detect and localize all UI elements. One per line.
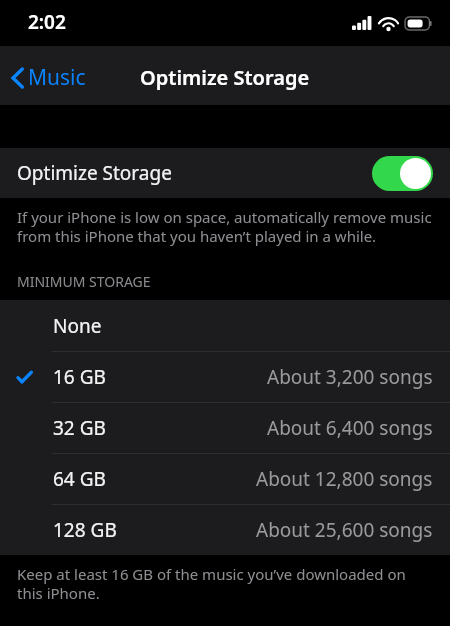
staticText: 64 GB — [53, 466, 106, 492]
staticText: 2:02 — [28, 9, 66, 35]
staticText: If your iPhone is low on space, automati… — [17, 207, 434, 246]
staticText: About 6,400 songs — [267, 415, 433, 441]
button[interactable]: 64 GB — [0, 453, 450, 504]
button[interactable]: 128 GB — [0, 504, 450, 555]
button[interactable]: 32 GB — [0, 402, 450, 453]
staticText: About 3,200 songs — [267, 364, 433, 390]
staticText: None — [53, 313, 102, 339]
staticText: About 12,800 songs — [256, 466, 433, 492]
button[interactable]: Optimize Storage toggle, on — [372, 156, 433, 191]
staticText: Music — [28, 63, 86, 92]
staticText: 32 GB — [53, 415, 106, 441]
button[interactable]: Optimize Storage — [0, 148, 450, 198]
staticText: MINIMUM STORAGE — [17, 272, 151, 291]
staticText: Optimize Storage — [140, 64, 310, 91]
button[interactable]: 16 GB — [0, 351, 450, 402]
staticText: Optimize Storage — [17, 160, 172, 186]
staticText: 16 GB — [53, 364, 106, 390]
staticText: 128 GB — [53, 517, 117, 543]
staticText: Keep at least 16 GB of the music you’ve … — [17, 564, 434, 603]
button[interactable]: Music — [0, 57, 98, 98]
staticText: About 25,600 songs — [256, 517, 433, 543]
button[interactable]: None — [0, 300, 450, 351]
